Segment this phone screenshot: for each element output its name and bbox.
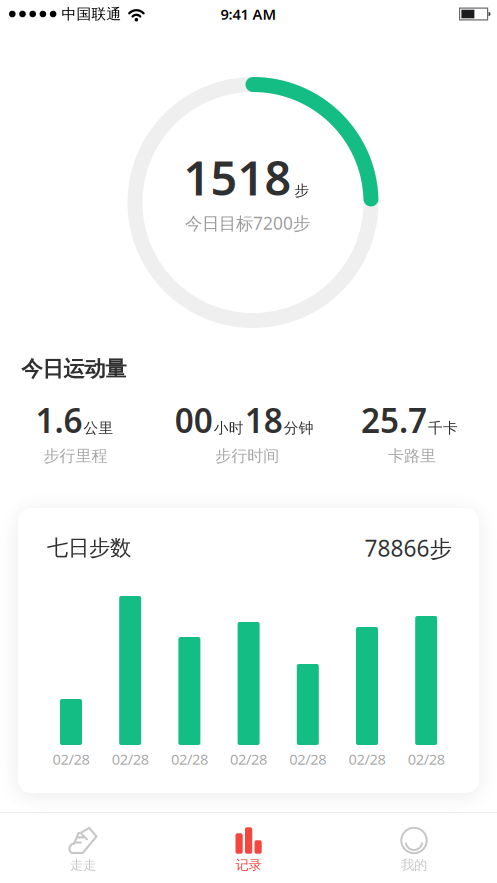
staticText: 02/28	[112, 749, 149, 769]
staticText: 分钟	[284, 419, 314, 437]
staticText: 步	[294, 182, 309, 200]
staticText: 02/28	[408, 749, 445, 769]
staticText: 千卡	[428, 419, 458, 437]
staticText: 9:41 AM	[220, 4, 276, 24]
staticText: 02/28	[289, 749, 326, 769]
staticText: 25.7	[361, 398, 427, 442]
staticText: 02/28	[171, 749, 208, 769]
staticText: 02/28	[348, 749, 385, 769]
staticText: 02/28	[52, 749, 89, 769]
staticText: 七日步数	[47, 535, 131, 561]
button[interactable]: 记录	[166, 812, 331, 883]
staticText: 步行时间	[215, 446, 279, 466]
staticText: 1.6	[35, 398, 82, 442]
staticText: 02/28	[230, 749, 267, 769]
staticText: 走走	[70, 857, 96, 873]
staticText: 小时	[214, 419, 244, 437]
button[interactable]: 走走	[0, 812, 165, 883]
staticText: 公里	[83, 419, 113, 437]
staticText: 中国联通	[61, 5, 121, 23]
staticText: 步行里程	[43, 446, 107, 466]
staticText: 我的	[401, 857, 427, 873]
staticText: 记录	[235, 857, 261, 873]
staticText: 今日运动量	[21, 356, 126, 382]
staticText: 78866步	[364, 533, 452, 563]
staticText: 1518	[183, 146, 291, 208]
staticText: 今日目标7200步	[185, 211, 310, 234]
button[interactable]: 我的	[331, 812, 496, 883]
staticText: 18	[245, 398, 283, 442]
staticText: 卡路里	[388, 446, 436, 466]
staticText: 00	[175, 398, 213, 442]
